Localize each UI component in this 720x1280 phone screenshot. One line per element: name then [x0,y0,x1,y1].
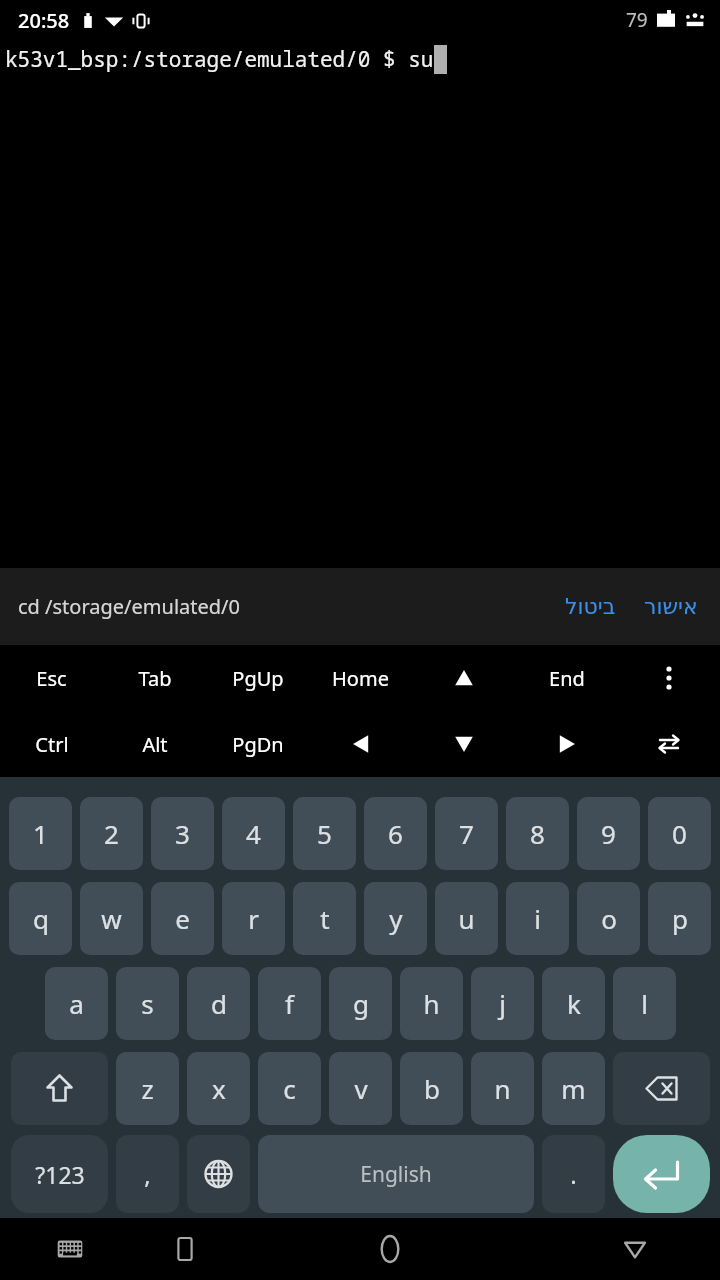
staticText: PgUp [232,665,284,692]
staticText: c [283,1071,296,1106]
button[interactable]: g [329,967,392,1040]
button[interactable]: Alt [103,711,206,777]
button[interactable]: English [258,1135,534,1213]
staticText: r [248,901,259,936]
staticText: h [423,986,440,1021]
button[interactable]: 5 [293,797,356,870]
button[interactable]: r [222,882,285,955]
staticText: m [561,1071,586,1106]
staticText: 3 [175,816,190,851]
button[interactable]: 0 [648,797,711,870]
button[interactable]: Home [309,645,412,711]
button[interactable]: 7 [435,797,498,870]
button[interactable]: Backspace [613,1052,710,1125]
button[interactable]: Tab [103,645,206,711]
button[interactable]: s [116,967,179,1040]
staticText: t [320,901,330,936]
button[interactable]: Switch keyboard mode [618,711,720,777]
staticText: i [534,901,541,936]
staticText: b [424,1071,440,1106]
staticText: l [641,986,648,1021]
staticText: ?123 [35,1159,85,1190]
button[interactable]: x [187,1052,250,1125]
button[interactable]: 2 [80,797,143,870]
button[interactable]: ?123 [11,1135,108,1213]
staticText: 79 [626,7,648,33]
button[interactable]: 4 [222,797,285,870]
button[interactable]: j [471,967,534,1040]
button[interactable]: b [400,1052,463,1125]
staticText: Tab [138,665,172,692]
button[interactable]: m [542,1052,605,1125]
button[interactable]: o [577,882,640,955]
staticText: 1 [33,816,48,851]
button[interactable]: k [542,967,605,1040]
button[interactable]: v [329,1052,392,1125]
button[interactable]: c [258,1052,321,1125]
staticText: w [101,901,122,936]
button[interactable]: Arrow right [515,711,618,777]
button[interactable]: w [80,882,143,955]
staticText: 8 [530,816,545,851]
button[interactable]: Hide keyboard [0,1218,140,1280]
button[interactable]: z [116,1052,179,1125]
button[interactable]: אישור [630,584,720,630]
button[interactable]: l [613,967,676,1040]
button[interactable]: Arrow up [412,645,515,711]
button[interactable]: Esc [0,645,103,711]
button[interactable]: Change language [187,1135,250,1213]
staticText: u [458,901,475,936]
button[interactable]: h [400,967,463,1040]
staticText: ביטול [565,594,616,620]
button[interactable]: Back [550,1218,720,1280]
button[interactable]: 3 [151,797,214,870]
button[interactable]: Ctrl [0,711,103,777]
button[interactable]: Arrow left [309,711,412,777]
button[interactable]: Shift [11,1052,108,1125]
button[interactable]: t [293,882,356,955]
button[interactable]: p [648,882,711,955]
button[interactable]: e [151,882,214,955]
button[interactable]: . [542,1135,605,1213]
staticText: , [144,1158,151,1191]
staticText: אישור [644,594,698,620]
staticText: 0 [672,816,687,851]
button[interactable]: 9 [577,797,640,870]
staticText: v [354,1071,368,1106]
button[interactable]: Enter [613,1135,710,1213]
button[interactable]: PgUp [206,645,309,711]
staticText: y [389,901,403,936]
staticText: z [141,1071,154,1106]
button[interactable]: Recents [140,1218,230,1280]
button[interactable]: u [435,882,498,955]
staticText: s [141,986,154,1021]
button[interactable]: 8 [506,797,569,870]
button[interactable]: 6 [364,797,427,870]
button[interactable]: Home [230,1218,550,1280]
button[interactable]: ביטול [551,584,630,630]
staticText: 4 [246,816,261,851]
button[interactable]: 1 [9,797,72,870]
button[interactable]: f [258,967,321,1040]
button[interactable]: a [45,967,108,1040]
button[interactable]: More options [618,645,720,711]
staticText: j [499,986,506,1021]
staticText: f [285,986,294,1021]
staticText: a [69,986,84,1021]
staticText: x [212,1071,226,1106]
button[interactable]: d [187,967,250,1040]
button[interactable]: , [116,1135,179,1213]
button[interactable]: k53v1_bsp:/storage/emulated/0 $ su [0,40,720,568]
button[interactable]: Arrow down [412,711,515,777]
staticText: Esc [36,665,67,692]
button[interactable]: PgDn [206,711,309,777]
button[interactable]: End [515,645,618,711]
staticText: Alt [142,731,168,758]
staticText: o [601,901,617,936]
button[interactable]: q [9,882,72,955]
button[interactable]: y [364,882,427,955]
button[interactable]: n [471,1052,534,1125]
button[interactable]: i [506,882,569,955]
staticText: q [33,901,49,936]
staticText: p [672,901,688,936]
